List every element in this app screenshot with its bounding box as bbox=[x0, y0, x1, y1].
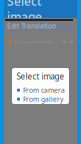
staticText: Select image bbox=[7, 0, 42, 25]
staticText: Select image bbox=[16, 71, 64, 82]
button[interactable]: From gallery bbox=[12, 95, 69, 104]
staticText: From gallery bbox=[23, 95, 63, 104]
button[interactable]: From camera bbox=[12, 86, 69, 95]
button[interactable]: Translation item bbox=[4, 36, 77, 48]
staticText: Edit Translation bbox=[7, 22, 56, 30]
staticText: From camera bbox=[23, 86, 65, 95]
staticText: Translation item bbox=[14, 38, 53, 46]
